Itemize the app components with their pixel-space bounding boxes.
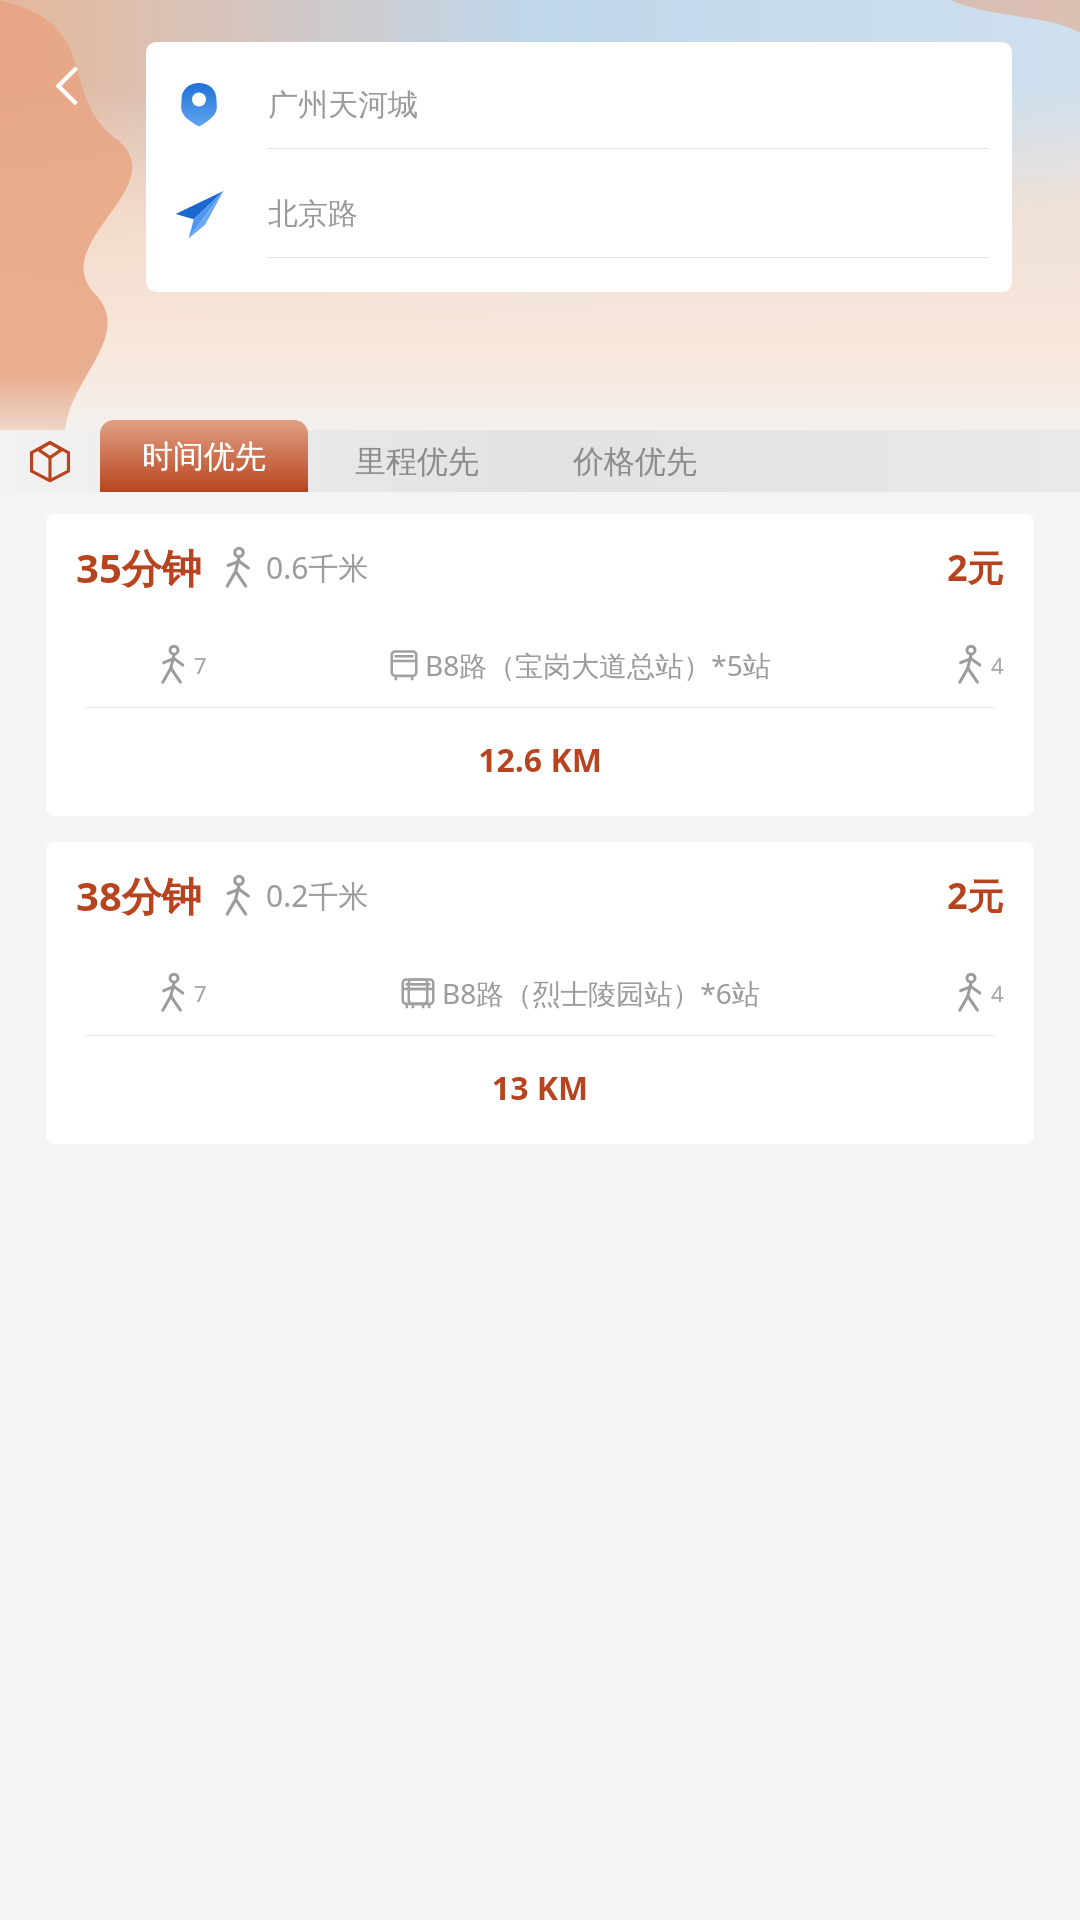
staticText: 12.6 KM: [46, 738, 1034, 782]
staticText: 38分钟: [76, 868, 202, 923]
staticText: 北京路: [268, 195, 358, 233]
staticText: B8路（烈士陵园站）*6站: [442, 974, 760, 1012]
button[interactable]: 35分钟: [46, 514, 1034, 816]
staticText: 7: [194, 978, 207, 1008]
staticText: B8路（宝岗大道总站）*5站: [425, 646, 771, 684]
staticText: 0.2千米: [266, 875, 369, 916]
staticText: 里程优先: [355, 442, 479, 481]
button[interactable]: 38分钟: [46, 842, 1034, 1144]
button[interactable]: 时间优先: [100, 420, 308, 492]
button[interactable]: Back: [34, 52, 102, 120]
staticText: 广州天河城: [268, 86, 418, 124]
other: Destination: [173, 188, 225, 240]
staticText: 时间优先: [142, 437, 266, 476]
button[interactable]: 里程优先: [308, 430, 526, 492]
button[interactable]: Destination: [170, 185, 988, 258]
staticText: 价格优先: [573, 442, 697, 481]
other: Origin: [176, 82, 222, 128]
staticText: 35分钟: [76, 540, 202, 595]
button[interactable]: Origin: [170, 76, 988, 149]
staticText: 0.6千米: [266, 547, 369, 588]
staticText: 7: [194, 650, 207, 680]
staticText: 13 KM: [46, 1066, 1034, 1110]
staticText: 4: [991, 650, 1004, 680]
staticText: 4: [991, 978, 1004, 1008]
staticText: 2元: [947, 543, 1004, 592]
button[interactable]: Transport mode: [0, 430, 100, 492]
staticText: 2元: [947, 871, 1004, 920]
button[interactable]: 价格优先: [526, 430, 744, 492]
